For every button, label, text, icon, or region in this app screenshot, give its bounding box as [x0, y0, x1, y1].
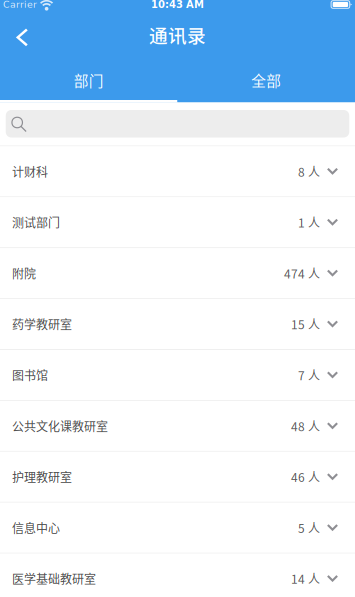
staticText: 15 人	[291, 315, 320, 333]
staticText: 附院	[12, 264, 36, 282]
staticText: 图书馆	[12, 366, 48, 384]
staticText: 46 人	[291, 468, 320, 485]
staticText: 474 人	[284, 264, 320, 282]
staticText: 部门	[74, 69, 104, 91]
button[interactable]: 测试部门	[0, 197, 355, 248]
staticText: 10:43 AM	[151, 0, 204, 10]
staticText: 医学基础教研室	[12, 570, 96, 587]
button[interactable]: Back	[0, 9, 44, 60]
staticText: 8 人	[298, 163, 320, 180]
staticText: 14 人	[291, 570, 320, 587]
button[interactable]: 计财科	[0, 146, 355, 197]
button[interactable]: 公共文化课教研室	[0, 401, 355, 452]
staticText: 信息中心	[12, 519, 60, 536]
staticText: 护理教研室	[12, 468, 72, 485]
staticText: 全部	[251, 69, 281, 91]
staticText: 药学教研室	[12, 315, 72, 333]
staticText: 7 人	[298, 366, 320, 384]
staticText: 通讯录	[149, 21, 206, 48]
button[interactable]: Search	[6, 110, 349, 137]
staticText: 48 人	[291, 417, 320, 435]
button[interactable]: 药学教研室	[0, 299, 355, 350]
button[interactable]: 医学基础教研室	[0, 554, 355, 597]
staticText: 1 人	[298, 214, 320, 231]
button[interactable]: 图书馆	[0, 350, 355, 401]
staticText: 公共文化课教研室	[12, 417, 108, 435]
staticText: 计财科	[12, 163, 48, 180]
button[interactable]: 部门	[0, 60, 177, 100]
staticText: 测试部门	[12, 214, 60, 231]
staticText: Carrier	[3, 0, 37, 10]
button[interactable]: 护理教研室	[0, 452, 355, 503]
button[interactable]: 附院	[0, 248, 355, 299]
button[interactable]: 全部	[177, 60, 355, 100]
button[interactable]: 信息中心	[0, 503, 355, 554]
staticText: 5 人	[298, 519, 320, 536]
